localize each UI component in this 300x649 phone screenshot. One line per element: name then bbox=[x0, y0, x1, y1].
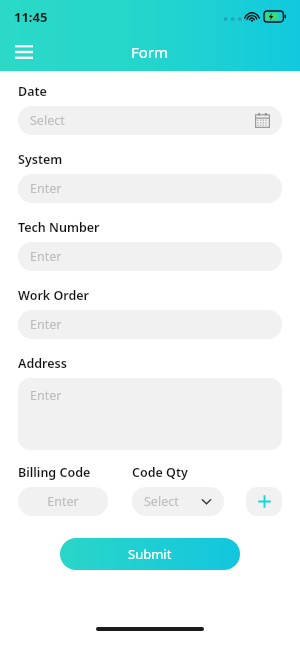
staticText: Address bbox=[18, 355, 67, 372]
button[interactable]: Submit bbox=[60, 538, 240, 570]
staticText: Tech Number bbox=[18, 219, 100, 236]
button[interactable]: Enter bbox=[18, 310, 282, 339]
staticText: Date bbox=[18, 83, 47, 100]
staticText: Code Qty bbox=[132, 464, 188, 481]
staticText: Select bbox=[30, 112, 65, 129]
staticText: Submit bbox=[128, 545, 172, 563]
staticText: Enter bbox=[30, 387, 62, 404]
staticText: Select bbox=[144, 493, 179, 510]
button[interactable]: Select bbox=[132, 487, 224, 516]
staticText: Enter bbox=[47, 493, 79, 510]
staticText: Enter bbox=[30, 180, 62, 197]
staticText: System bbox=[18, 151, 63, 168]
staticText: Work Order bbox=[18, 287, 89, 304]
staticText: Enter bbox=[30, 316, 62, 333]
button[interactable]: Select bbox=[18, 106, 282, 135]
staticText: Form bbox=[131, 42, 169, 62]
button[interactable]: Add billing code bbox=[246, 487, 282, 516]
button[interactable]: Open navigation menu bbox=[8, 36, 40, 68]
staticText: Enter bbox=[30, 248, 62, 265]
button[interactable]: Enter bbox=[18, 487, 108, 516]
button[interactable]: Enter bbox=[18, 242, 282, 271]
staticText: Billing Code bbox=[18, 464, 132, 481]
button[interactable]: Enter bbox=[18, 378, 282, 450]
staticText: 11:45 bbox=[14, 8, 48, 26]
button[interactable]: Enter bbox=[18, 174, 282, 203]
